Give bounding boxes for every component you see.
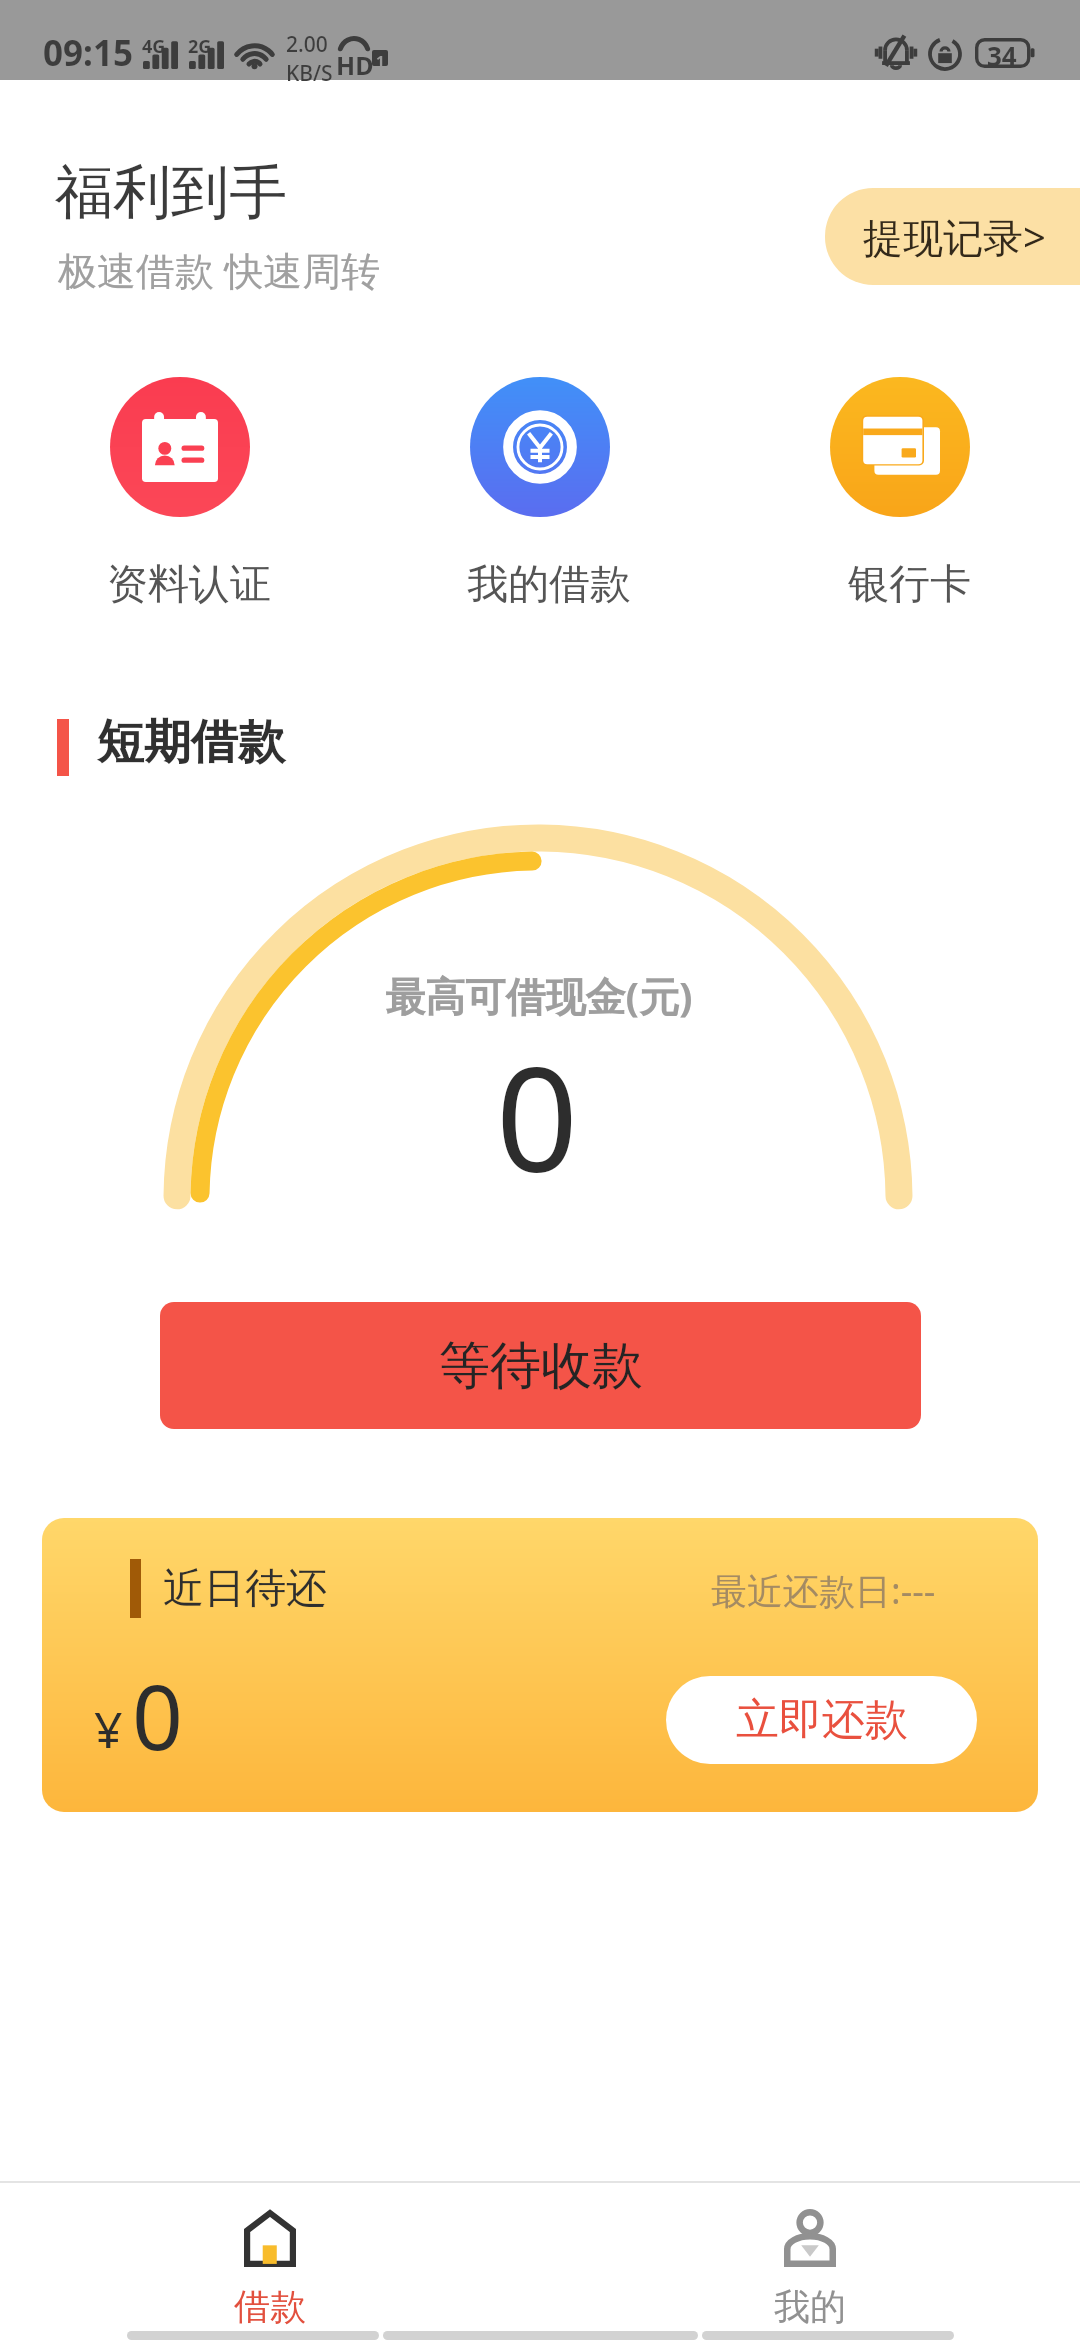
- staticText: 近日待还: [163, 1563, 327, 1615]
- staticText: 1: [376, 50, 385, 66]
- button[interactable]: 我的借款: [360, 377, 720, 611]
- button[interactable]: 我的: [540, 2183, 1080, 2333]
- staticText: 银行卡: [848, 559, 971, 611]
- staticText: 立即还款: [736, 1693, 908, 1747]
- staticText: 福利到手: [55, 156, 287, 229]
- staticText: 2G: [188, 34, 212, 59]
- button[interactable]: 银行卡: [720, 377, 1080, 611]
- staticText: 2.00: [286, 30, 328, 59]
- button[interactable]: 立即还款: [666, 1676, 977, 1764]
- other: Rotation lock: [928, 37, 962, 71]
- staticText: 资料认证: [107, 559, 271, 611]
- staticText: 我的: [774, 2284, 846, 2329]
- staticText: 最高可借现金(元): [0, 968, 1079, 1023]
- staticText: 4G: [142, 34, 166, 59]
- button[interactable]: 资料认证: [0, 377, 360, 611]
- staticText: 等待收款: [439, 1334, 643, 1398]
- staticText: HD: [336, 48, 374, 82]
- staticText: KB/S: [286, 59, 333, 88]
- staticText: 09:15: [43, 29, 133, 77]
- staticText: 最近还款日:---: [711, 1566, 936, 1615]
- staticText: 0: [0, 1018, 1077, 1214]
- staticText: 极速借款 快速周转: [58, 243, 381, 296]
- staticText: 0: [132, 1655, 183, 1776]
- staticText: 我的借款: [467, 559, 631, 611]
- button[interactable]: 近日待还: [42, 1518, 1038, 1812]
- staticText: 34: [987, 38, 1017, 68]
- staticText: 借款: [234, 2284, 306, 2329]
- button[interactable]: 提现记录>: [825, 188, 1080, 285]
- button[interactable]: 等待收款: [160, 1302, 921, 1429]
- staticText: 提现记录>: [863, 209, 1046, 264]
- staticText: ¥: [94, 1695, 123, 1763]
- button[interactable]: 借款: [0, 2183, 540, 2333]
- staticText: 短期借款: [97, 713, 285, 772]
- other: Silent mode: [875, 35, 917, 71]
